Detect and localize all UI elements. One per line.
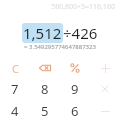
staticText: 9 <box>71 80 79 98</box>
button[interactable]: 6 <box>60 100 90 120</box>
button[interactable]: 9 <box>60 78 90 100</box>
button[interactable]: 8 <box>30 78 60 100</box>
staticText: 8 <box>41 80 49 98</box>
button[interactable]: 7 <box>0 78 30 100</box>
button[interactable]: Backspace <box>30 58 60 78</box>
staticText: C <box>12 61 19 76</box>
staticText: 1,512 <box>23 23 62 43</box>
button[interactable]: Clear <box>0 58 30 78</box>
button[interactable]: Plus <box>90 58 120 78</box>
staticText: 5 <box>41 102 49 120</box>
staticText: 6 <box>71 102 79 120</box>
button[interactable]: Multiply <box>90 78 120 100</box>
staticText: 4 <box>11 102 19 120</box>
staticText: ÷426 <box>63 23 98 43</box>
staticText: = 3.549295774647887323 <box>24 43 96 51</box>
staticText: 580,800÷5=116,160 <box>51 2 115 12</box>
staticText: 7 <box>11 80 19 98</box>
button[interactable]: Percent <box>60 58 90 78</box>
button[interactable]: 4 <box>0 100 30 120</box>
button[interactable]: 1,512 <box>23 23 62 43</box>
button[interactable]: 5 <box>30 100 60 120</box>
button[interactable]: Minus <box>90 100 120 120</box>
